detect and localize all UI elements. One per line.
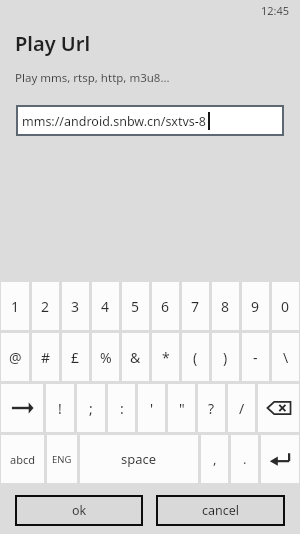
staticText: 9 [251, 297, 260, 316]
staticText: - [253, 348, 258, 367]
staticText: : [120, 399, 124, 418]
staticText: \ [283, 348, 289, 367]
button[interactable]: 5 [122, 282, 149, 330]
staticText: Play mms, rtsp, http, m3u8... [15, 70, 170, 86]
button[interactable]: ! [46, 384, 74, 432]
button[interactable]: ; [77, 384, 105, 432]
staticText: . [243, 450, 247, 468]
staticText: & [130, 348, 141, 367]
button[interactable]: 4 [92, 282, 119, 330]
button[interactable]: Tab [1, 384, 43, 432]
staticText: ( [193, 348, 198, 367]
button[interactable]: @ [1, 333, 29, 381]
staticText: Play Url [15, 30, 91, 57]
staticText: cancel [202, 502, 240, 519]
staticText: abcd [10, 452, 35, 467]
button[interactable]: * [152, 333, 179, 381]
button[interactable]: ok [15, 495, 143, 526]
staticText: , [213, 450, 217, 468]
staticText: / [239, 399, 245, 418]
staticText: ENG [52, 453, 72, 466]
button[interactable]: 3 [62, 282, 89, 330]
staticText: 12:45 [261, 3, 290, 18]
staticText: 0 [281, 297, 290, 316]
staticText: mms://android.snbw.cn/sxtvs-8 [22, 113, 207, 130]
staticText: % [100, 348, 112, 367]
staticText: # [41, 348, 51, 367]
staticText: 8 [221, 297, 230, 316]
button[interactable]: £ [62, 333, 89, 381]
staticText: 4 [101, 297, 110, 316]
button[interactable]: - [242, 333, 269, 381]
staticText: " [179, 399, 185, 418]
button[interactable]: 1 [1, 282, 29, 330]
button[interactable]: ENG [47, 435, 77, 483]
button[interactable]: abcd [1, 435, 44, 483]
button[interactable]: Enter [261, 435, 299, 483]
button[interactable]: / [228, 384, 255, 432]
button[interactable]: mms://android.snbw.cn/sxtvs-8 [16, 105, 284, 136]
button[interactable]: , [201, 435, 228, 483]
button[interactable]: & [122, 333, 149, 381]
button[interactable]: 0 [272, 282, 299, 330]
staticText: 5 [131, 297, 140, 316]
button[interactable]: space [80, 435, 198, 483]
button[interactable]: \ [272, 333, 299, 381]
staticText: space [121, 450, 157, 468]
button[interactable]: ' [138, 384, 165, 432]
staticText: ! [58, 399, 62, 418]
button[interactable]: Backspace [258, 384, 299, 432]
button[interactable]: 8 [212, 282, 239, 330]
staticText: ok [72, 502, 87, 519]
staticText: @ [9, 348, 22, 367]
button[interactable]: ) [212, 333, 239, 381]
staticText: ' [150, 399, 154, 418]
button[interactable]: ( [182, 333, 209, 381]
button[interactable]: " [168, 384, 195, 432]
staticText: 7 [191, 297, 200, 316]
staticText: 2 [41, 297, 50, 316]
staticText: ? [208, 399, 215, 418]
staticText: £ [71, 348, 80, 367]
button[interactable]: 7 [182, 282, 209, 330]
staticText: 3 [71, 297, 80, 316]
button[interactable]: : [108, 384, 135, 432]
staticText: 6 [161, 297, 170, 316]
staticText: 1 [11, 297, 20, 316]
button[interactable]: cancel [156, 495, 285, 526]
button[interactable]: # [32, 333, 59, 381]
button[interactable]: ? [198, 384, 225, 432]
button[interactable]: . [231, 435, 258, 483]
staticText: * [162, 348, 170, 367]
button[interactable]: 9 [242, 282, 269, 330]
staticText: ; [89, 399, 93, 418]
button[interactable]: 6 [152, 282, 179, 330]
button[interactable]: % [92, 333, 119, 381]
button[interactable]: 2 [32, 282, 59, 330]
staticText: ) [223, 348, 228, 367]
